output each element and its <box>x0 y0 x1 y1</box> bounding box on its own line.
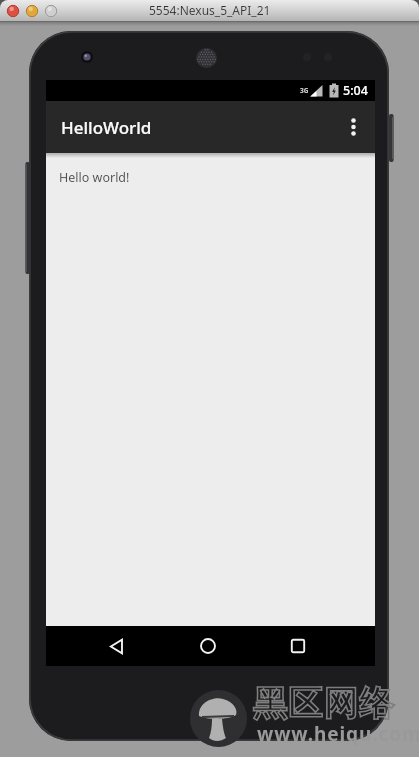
button[interactable] <box>45 5 57 17</box>
button[interactable] <box>7 5 19 17</box>
staticText: 5:04 <box>343 82 368 99</box>
button[interactable] <box>331 101 375 153</box>
staticText: Hello world! <box>59 169 130 186</box>
button[interactable] <box>93 626 139 666</box>
staticText: www.heiqu.com <box>257 721 419 747</box>
staticText: 3G <box>300 86 309 95</box>
button[interactable] <box>185 626 231 666</box>
button[interactable] <box>26 5 38 17</box>
staticText: 5554:Nexus_5_API_21 <box>149 2 271 18</box>
staticText: HelloWorld <box>61 116 152 139</box>
staticText: 黑区网络 <box>252 682 394 725</box>
button[interactable] <box>275 626 321 666</box>
